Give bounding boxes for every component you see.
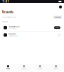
staticText: Passport [9, 33, 17, 35]
staticText: More [54, 68, 58, 69]
staticText: 2 documents saved [2, 16, 16, 18]
staticText: Cards [21, 68, 26, 69]
button[interactable]: Visa debit card [2, 24, 62, 31]
staticText: Add new [54, 16, 60, 18]
button[interactable]: Account [59, 5, 62, 8]
staticText: Expires 2031 [9, 35, 19, 37]
button[interactable]: Passport [2, 31, 62, 38]
staticText: Code [55, 27, 59, 29]
staticText: •••• 4821 [9, 28, 17, 30]
staticText: Home [6, 68, 10, 69]
staticText: Scan [38, 68, 42, 69]
staticText: RECENT [2, 21, 8, 23]
button[interactable]: Scan [32, 65, 48, 69]
button[interactable]: Home [0, 65, 16, 69]
button[interactable]: More [48, 65, 64, 69]
staticText: 9:41 [2, 0, 9, 3]
staticText: Visa debit card [9, 26, 20, 28]
staticText: Records [2, 10, 13, 14]
button[interactable]: Cards [16, 65, 32, 69]
button[interactable]: Add new [53, 15, 62, 19]
